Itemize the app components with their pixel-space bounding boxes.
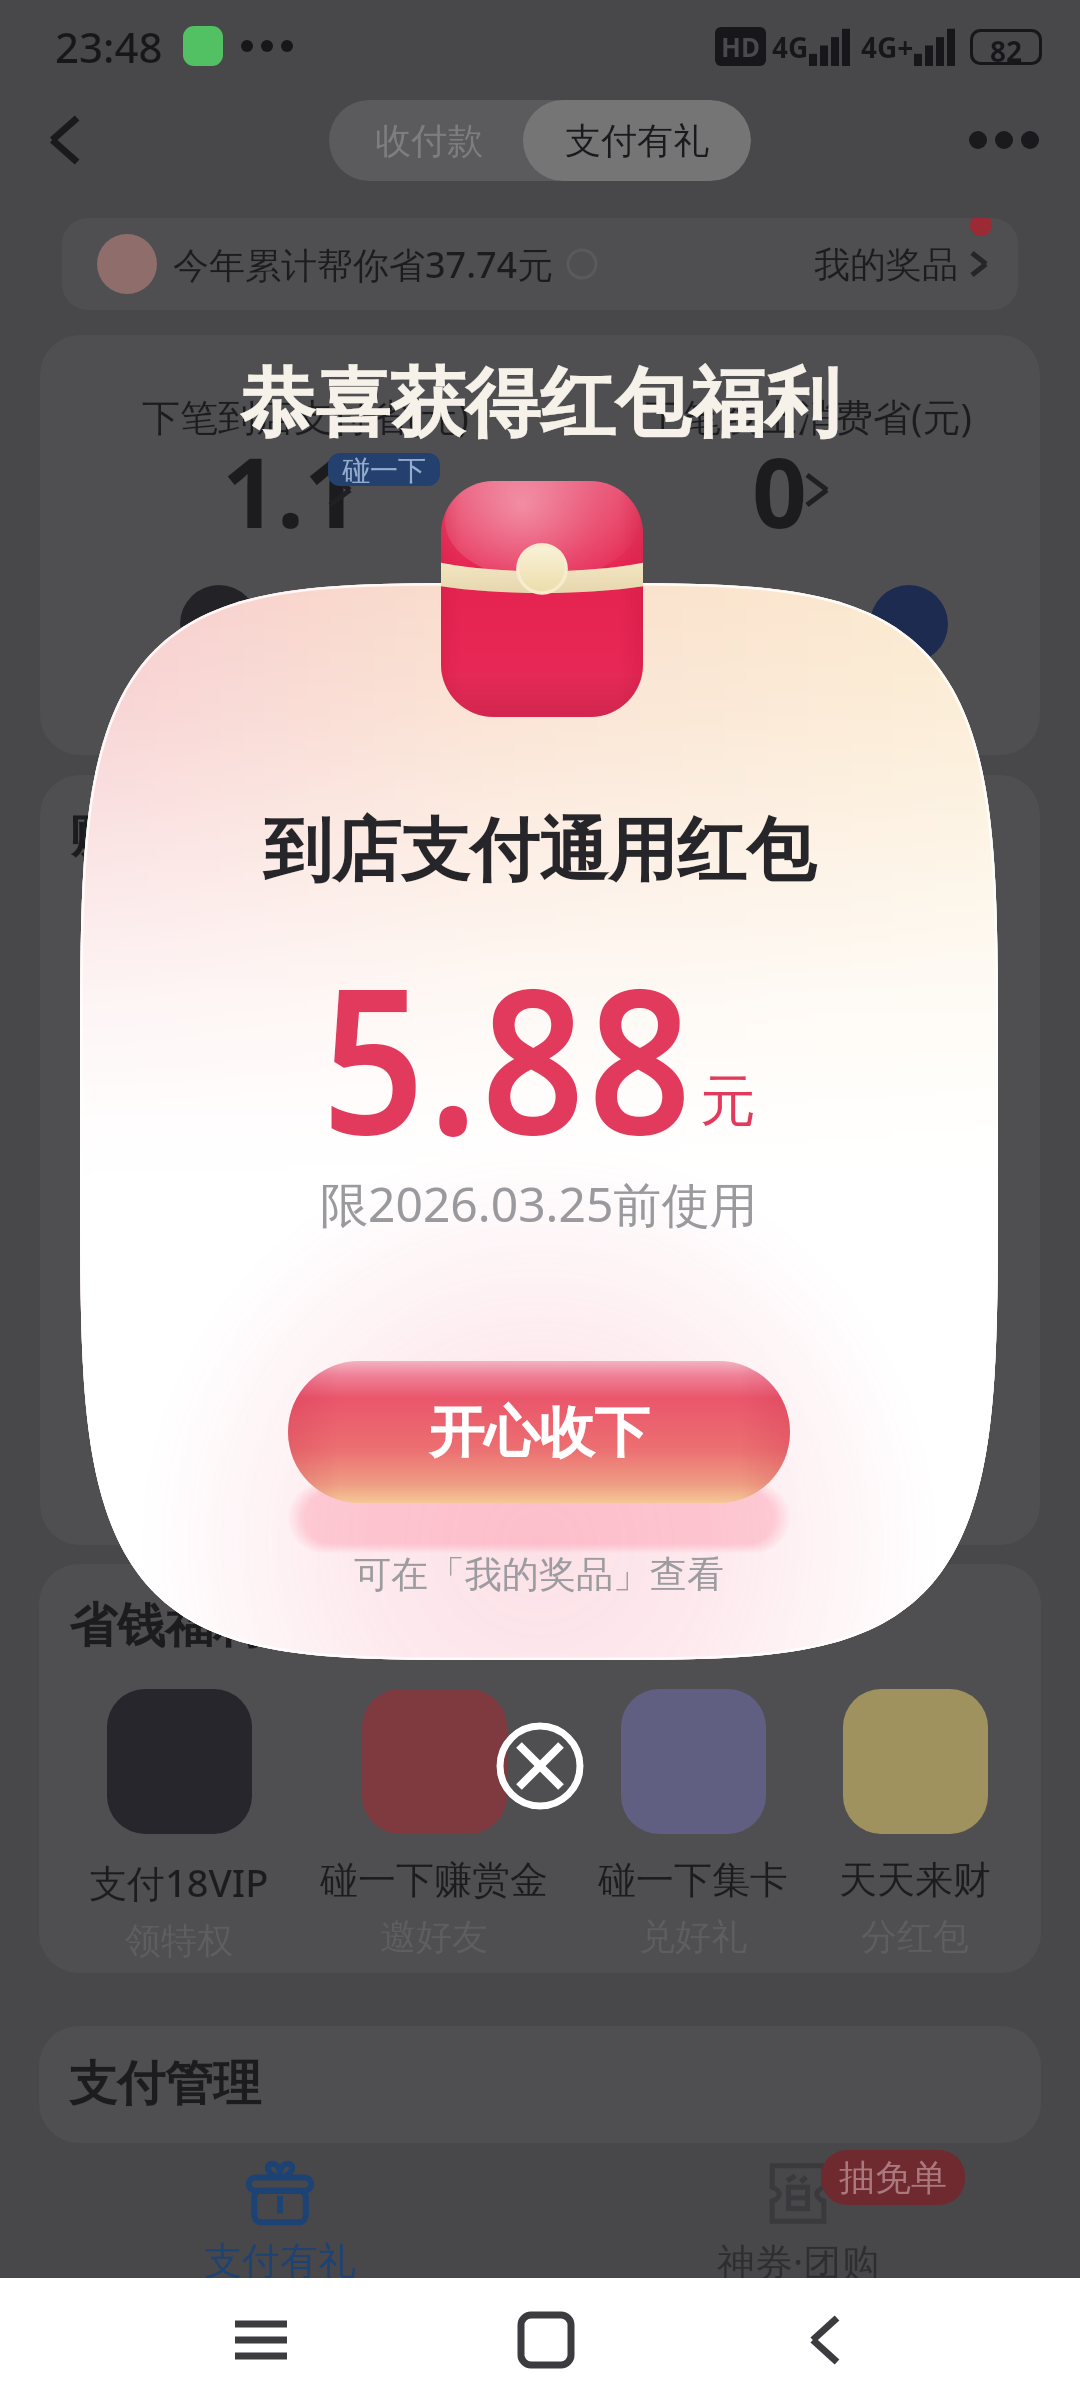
staticText: 23:48 [55,18,163,75]
staticText: HD [721,29,760,64]
button[interactable]: Recents [233,2318,289,2362]
button[interactable]: 碰一下集卡 [598,1689,788,1959]
button[interactable]: Close [496,1722,584,1810]
staticText: 赚 [70,805,118,865]
staticText: 邀好友 [380,1914,488,1959]
staticText: 4G [772,28,809,66]
button[interactable]: 支付18VIP [89,1689,269,1963]
staticText: 兑好礼 [639,1914,747,1959]
staticText: 82 [990,32,1023,62]
staticText: 限2026.03.25前使用 [320,1171,758,1237]
button[interactable]: 收付款 [375,118,483,163]
staticText: 收付款 [375,118,483,163]
staticText: 支付有礼 [204,2237,356,2285]
staticText: 碰一下赚赏金 [320,1856,548,1904]
button[interactable]: 支付有礼 [145,2160,415,2285]
button[interactable]: 支付有礼 [565,118,709,163]
button[interactable]: Home [521,2315,571,2365]
staticText: 天天来财 [839,1856,991,1904]
staticText: 领特权 [125,1918,233,1963]
staticText: 4G+ [861,28,914,66]
staticText: 神券·团购 [717,2235,880,2287]
button[interactable]: More [968,130,1038,150]
button[interactable]: 神券·团购 [663,2162,933,2287]
button[interactable]: 开心收下 [288,1361,790,1503]
staticText: 恭喜获得红包福利 [0,357,1080,451]
staticText: 抽免单 [839,2155,947,2200]
staticText: 元 [700,1066,756,1137]
button[interactable]: Back [44,112,90,168]
staticText: 碰一下 [342,453,426,486]
staticText: 到店支付通用红包 [263,808,815,895]
staticText: 今年累计帮你省37.74元 [173,240,554,289]
button[interactable]: Back [804,2312,848,2368]
staticText: 支付有礼 [565,118,709,163]
staticText: 分红包 [861,1914,969,1959]
staticText: 可在「我的奖品」查看 [354,1551,724,1598]
staticText: 省钱福利 [69,1596,261,1656]
staticText: 下笔到店支付省(元) [142,390,469,442]
staticText: 下笔线上消费省(元) [645,390,972,442]
staticText: 0 [752,425,807,556]
button[interactable]: 碰一下赚赏金 [320,1689,548,1959]
button[interactable]: 天天来财 [839,1689,991,1959]
staticText: 支付18VIP [89,1856,269,1908]
staticText: 支付管理 [69,2054,261,2114]
staticText: 碰一下集卡 [598,1856,788,1904]
staticText: 开心收下 [429,1398,649,1467]
staticText: 1.1 [222,425,359,556]
staticText: 我的奖品 [814,242,958,287]
button[interactable]: 今年累计帮你省37.74元 [62,218,1018,310]
staticText: 5.88 [322,920,695,1192]
